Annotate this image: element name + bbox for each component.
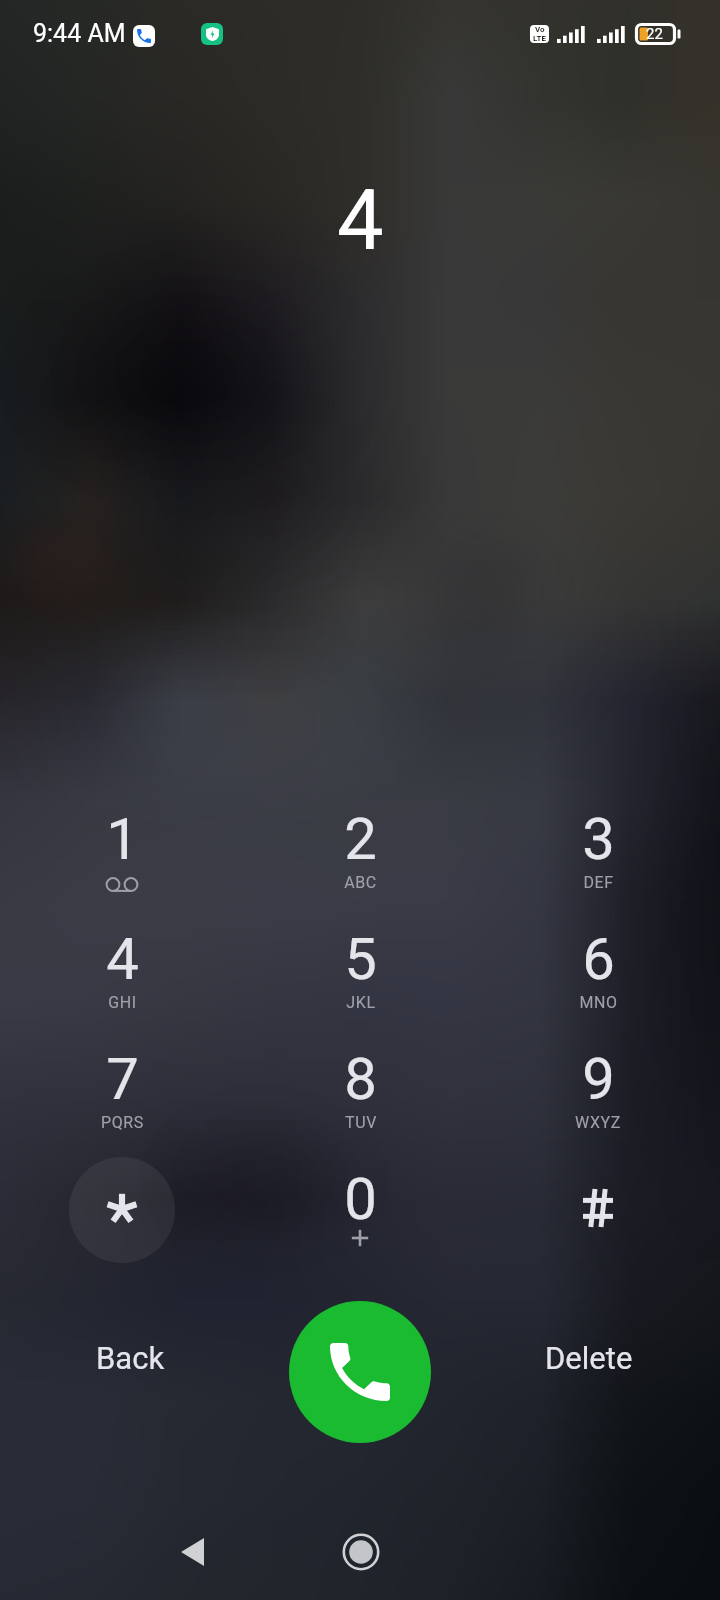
staticText: WXYZ	[575, 1113, 621, 1132]
staticText: TUV	[345, 1113, 377, 1132]
button[interactable]: 3	[479, 805, 717, 925]
staticText: DEF	[583, 873, 614, 892]
button[interactable]: 9	[479, 1045, 717, 1165]
staticText: PQRS	[101, 1113, 144, 1132]
staticText: 6	[582, 925, 615, 993]
staticText: ABC	[344, 873, 377, 892]
button[interactable]: 6	[479, 925, 717, 1045]
staticText: 2	[344, 805, 377, 873]
button[interactable]: Delete	[521, 1328, 657, 1388]
staticText: 3	[582, 805, 615, 873]
staticText: 4	[106, 925, 139, 993]
button[interactable]: Home	[321, 1512, 401, 1592]
staticText: 5	[344, 925, 377, 993]
button[interactable]	[3, 1165, 241, 1285]
staticText: 9	[582, 1045, 615, 1113]
staticText: 8	[344, 1045, 377, 1113]
button[interactable]: Back	[152, 1512, 232, 1592]
staticText: JKL	[346, 993, 376, 1012]
staticText: 7	[106, 1045, 139, 1113]
staticText: MNO	[579, 993, 618, 1012]
button[interactable]: 0	[241, 1165, 479, 1285]
button[interactable]: Back	[72, 1328, 189, 1388]
staticText: Back	[96, 1340, 165, 1376]
staticText: 1	[106, 805, 139, 873]
button[interactable]: 2	[241, 805, 479, 925]
button[interactable]: 5	[241, 925, 479, 1045]
staticText: 4	[337, 172, 384, 269]
staticText: Delete	[545, 1340, 633, 1376]
button[interactable]: 7	[3, 1045, 241, 1165]
staticText: 22	[646, 25, 663, 43]
button[interactable]: Call	[289, 1301, 431, 1443]
button[interactable]: 8	[241, 1045, 479, 1165]
button[interactable]	[479, 1165, 717, 1285]
button[interactable]: 4	[3, 925, 241, 1045]
staticText: 0	[344, 1165, 377, 1233]
staticText: LTE	[533, 34, 546, 43]
button[interactable]: 1	[3, 805, 241, 925]
staticText: 9:44 AM	[33, 19, 126, 48]
staticText: Vo	[535, 25, 545, 34]
staticText: GHI	[108, 993, 137, 1012]
